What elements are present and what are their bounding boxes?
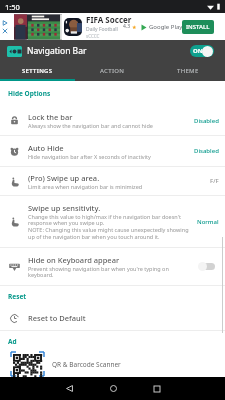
- staticText: Prevent showing navigation bar when you'…: [28, 265, 169, 279]
- staticText: THEME: [177, 67, 199, 75]
- staticText: ACTION: [100, 67, 125, 75]
- staticText: ★: [132, 24, 137, 30]
- button[interactable]: FIFA Soccer icon: [64, 18, 82, 36]
- button[interactable]: SETTINGS: [0, 62, 75, 79]
- staticText: Normal: [197, 218, 219, 226]
- staticText: Change this value to high/max if the nav…: [28, 213, 192, 241]
- button[interactable]: THEME: [150, 62, 225, 79]
- staticText: Reset: [8, 292, 27, 301]
- staticText: Daily Football: [86, 26, 118, 33]
- button[interactable]: Hide on Keyboard appear: [0, 248, 225, 285]
- button[interactable]: App icon: [7, 46, 22, 57]
- staticText: Always show the navigation bar and canno…: [28, 122, 153, 129]
- staticText: INSTALL: [186, 23, 210, 31]
- button[interactable]: ACTION: [75, 62, 150, 79]
- staticText: 1:50: [5, 2, 20, 12]
- staticText: 4.3: [123, 23, 131, 30]
- button[interactable]: (Pro) Swipe up area.: [0, 167, 225, 195]
- staticText: F/F: [210, 177, 219, 185]
- staticText: Limit area when navigation bar is minimi…: [28, 183, 143, 190]
- button[interactable]: INSTALL: [182, 20, 214, 34]
- staticText: Disabled: [194, 117, 219, 125]
- staticText: Swipe up sensitivity.: [28, 203, 101, 213]
- staticText: SETTINGS: [22, 67, 53, 75]
- staticText: sCCCC: [86, 33, 100, 39]
- staticText: Reset to Default: [28, 313, 86, 323]
- staticText: QR & Barcode Scanner: [52, 360, 121, 369]
- staticText: Disabled: [194, 147, 219, 155]
- staticText: Navigation Bar: [27, 45, 87, 57]
- staticText: Ad: [8, 337, 17, 346]
- staticText: Hide Options: [8, 89, 51, 98]
- staticText: Hide on Keyboard appear: [28, 255, 120, 265]
- button[interactable]: Home: [91, 377, 135, 400]
- button[interactable]: Auto Hide: [0, 136, 225, 166]
- button[interactable]: Enable navigation bar: [190, 45, 214, 57]
- staticText: Hide navigation bar after X seconds of i…: [28, 153, 151, 160]
- button[interactable]: Lock the bar: [0, 106, 225, 135]
- staticText: (Pro) Swipe up area.: [28, 173, 100, 183]
- button[interactable]: Back: [47, 377, 91, 400]
- staticText: FIFA Soccer: [86, 14, 132, 25]
- button[interactable]: QR & Barcode Scanner: [10, 351, 225, 377]
- button[interactable]: Recent apps: [135, 377, 179, 400]
- staticText: Google Play: [149, 23, 183, 31]
- button[interactable]: Reset to Default: [0, 306, 225, 330]
- button[interactable]: Swipe up sensitivity.: [0, 196, 225, 247]
- staticText: Auto Hide: [28, 143, 64, 153]
- staticText: Lock the bar: [28, 112, 73, 122]
- staticText: ON: [193, 47, 203, 55]
- button[interactable]: Ad image: [14, 13, 62, 40]
